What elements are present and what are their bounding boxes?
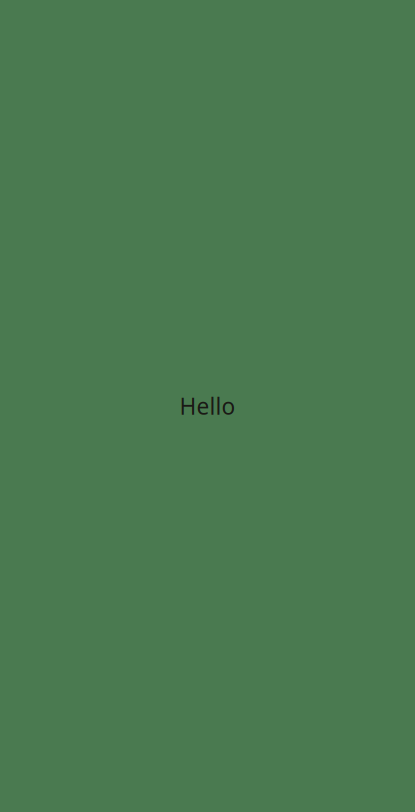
staticText: Hello (179, 391, 235, 421)
